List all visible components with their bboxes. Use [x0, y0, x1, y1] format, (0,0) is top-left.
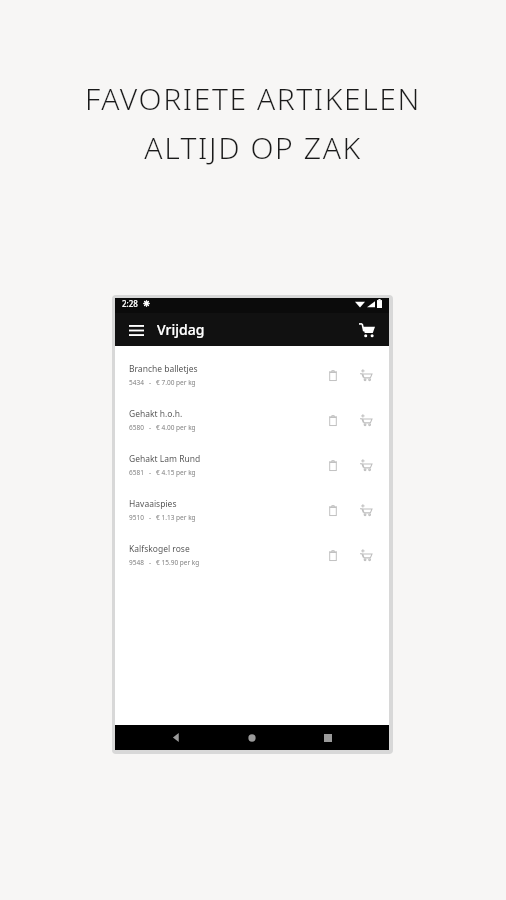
- button[interactable]: Delete: [320, 542, 346, 568]
- staticText: Kalfskogel rose: [129, 543, 190, 555]
- staticText: 9510 - € 1.13 per kg: [129, 513, 196, 522]
- button[interactable]: Delete: [320, 497, 346, 523]
- button[interactable]: Back: [161, 725, 191, 750]
- staticText: Vrijdag: [157, 320, 205, 339]
- staticText: Gehakt Lam Rund: [129, 453, 201, 465]
- staticText: Branche balletjes: [129, 363, 198, 375]
- button[interactable]: Havaaispies: [115, 487, 389, 532]
- staticText: 5434 - € 7.00 per kg: [129, 378, 196, 387]
- staticText: 6581 - € 4.15 per kg: [129, 468, 196, 477]
- button[interactable]: Delete: [320, 407, 346, 433]
- button[interactable]: Menu: [123, 317, 149, 343]
- button[interactable]: Add to cart: [353, 362, 379, 388]
- button[interactable]: Gehakt Lam Rund: [115, 442, 389, 487]
- staticText: FAVORIETE ARTIKELEN: [85, 78, 421, 119]
- button[interactable]: Home: [237, 725, 267, 750]
- button[interactable]: Add to cart: [353, 452, 379, 478]
- button[interactable]: Add to cart: [353, 497, 379, 523]
- staticText: 6580 - € 4.00 per kg: [129, 423, 196, 432]
- button[interactable]: Shopping cart: [354, 317, 380, 343]
- staticText: Gehakt h.o.h.: [129, 408, 183, 420]
- button[interactable]: Branche balletjes: [115, 352, 389, 397]
- staticText: ALTIJD OP ZAK: [144, 127, 362, 168]
- staticText: 2:28: [122, 298, 138, 309]
- staticText: Havaaispies: [129, 498, 177, 510]
- button[interactable]: Delete: [320, 362, 346, 388]
- button[interactable]: Gehakt h.o.h.: [115, 397, 389, 442]
- button[interactable]: Kalfskogel rose: [115, 532, 389, 577]
- button[interactable]: Add to cart: [353, 542, 379, 568]
- button[interactable]: Add to cart: [353, 407, 379, 433]
- button[interactable]: Delete: [320, 452, 346, 478]
- button[interactable]: Recent apps: [313, 725, 343, 750]
- staticText: 9548 - € 15.90 per kg: [129, 558, 200, 567]
